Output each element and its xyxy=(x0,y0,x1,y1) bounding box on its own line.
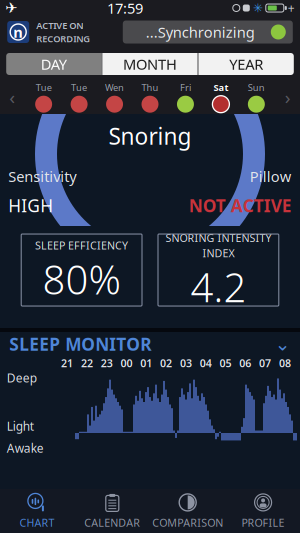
staticText: 80% xyxy=(43,252,121,306)
button[interactable]: CALENDAR xyxy=(75,489,150,533)
staticText: 00 xyxy=(120,356,132,370)
staticText: SLEEP EFFICIENCY xyxy=(35,238,128,253)
button[interactable]: Sat xyxy=(207,81,235,113)
staticText: ⌄ xyxy=(275,333,291,355)
staticText: 07 xyxy=(259,356,271,370)
staticText: Sat xyxy=(213,81,228,94)
button[interactable]: ...Synchronizing xyxy=(123,20,293,43)
staticText: NOT ACTIVE xyxy=(189,194,292,217)
staticText: SNORING INTENSITY xyxy=(165,231,271,245)
staticText: RECORDING xyxy=(36,32,90,45)
staticText: Sun xyxy=(248,81,265,94)
staticText: COMPARISON xyxy=(152,515,223,530)
button[interactable]: MONTH xyxy=(102,53,198,75)
staticText: PROFILE xyxy=(242,515,285,530)
button[interactable]: Fri xyxy=(171,81,199,113)
staticText: Fri xyxy=(180,81,191,94)
staticText: Sensitivity xyxy=(8,166,76,186)
staticText: ✳ xyxy=(253,1,263,15)
button[interactable]: DAY xyxy=(6,53,101,75)
staticText: MONTH xyxy=(123,54,177,74)
staticText: Awake xyxy=(7,440,44,456)
staticText: 23 xyxy=(101,356,113,370)
staticText: 05 xyxy=(219,356,231,370)
button[interactable]: Tue xyxy=(30,81,58,113)
button[interactable]: PROFILE xyxy=(225,489,300,533)
staticText: DAY xyxy=(41,54,67,74)
button[interactable]: Tue xyxy=(65,81,93,113)
staticText: CHART xyxy=(19,515,54,530)
staticText: 06 xyxy=(239,356,251,370)
button[interactable]: CHART xyxy=(0,489,75,533)
staticText: 22 xyxy=(81,356,93,370)
staticText: + xyxy=(288,0,295,16)
staticText: ACTIVE ON xyxy=(36,19,83,31)
staticText: Snoring xyxy=(108,121,191,151)
button[interactable]: Thu xyxy=(136,81,164,113)
staticText: Pillow xyxy=(250,166,292,186)
staticText: › xyxy=(285,85,291,109)
button[interactable]: Next week xyxy=(278,82,298,112)
button[interactable]: Sun xyxy=(242,81,270,113)
button[interactable]: Wen xyxy=(101,81,129,113)
staticText: Tue xyxy=(71,81,87,94)
button[interactable]: Previous week xyxy=(2,82,22,112)
staticText: 02 xyxy=(160,356,172,370)
staticText: 17:59 xyxy=(107,0,143,18)
staticText: 4.2 xyxy=(190,260,246,313)
button[interactable]: SLEEP MONITOR xyxy=(0,332,300,356)
staticText: Light xyxy=(7,418,34,434)
staticText: Tue xyxy=(36,81,52,94)
staticText: 21 xyxy=(61,356,73,370)
staticText: n xyxy=(13,22,23,42)
staticText: 03 xyxy=(180,356,192,370)
staticText: CALENDAR xyxy=(84,515,140,530)
staticText: INDEX xyxy=(202,246,234,260)
staticText: 01 xyxy=(140,356,152,370)
button[interactable]: COMPARISON xyxy=(150,489,225,533)
staticText: Thu xyxy=(141,81,158,94)
staticText: ‹ xyxy=(9,85,15,109)
staticText: 08 xyxy=(279,356,291,370)
staticText: SLEEP MONITOR xyxy=(9,332,151,355)
staticText: ...Synchronizing xyxy=(146,22,255,42)
staticText: Deep xyxy=(7,370,37,386)
staticText: YEAR xyxy=(229,54,263,74)
staticText: ✈ xyxy=(5,0,17,16)
button[interactable]: YEAR xyxy=(199,53,294,75)
staticText: HIGH xyxy=(8,194,53,217)
staticText: Wen xyxy=(105,81,124,94)
staticText: 04 xyxy=(200,356,212,370)
